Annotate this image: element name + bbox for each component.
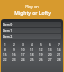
button[interactable]: Item 2 bbox=[3, 34, 61, 39]
button[interactable]: Item 1 bbox=[3, 28, 61, 33]
staticText: Mighty or Lofty bbox=[14, 10, 51, 17]
staticText: 5 bbox=[40, 43, 42, 47]
button[interactable]: 20 bbox=[48, 53, 52, 57]
button[interactable]: 28 bbox=[57, 58, 61, 62]
staticText: 1 bbox=[4, 43, 6, 47]
button[interactable]: 10 bbox=[21, 48, 25, 52]
staticText: 25 bbox=[30, 58, 34, 62]
staticText: Play on bbox=[25, 4, 39, 9]
staticText: Item 0 bbox=[3, 23, 13, 27]
button[interactable]: 13 bbox=[48, 48, 52, 52]
staticText: Item 2 bbox=[3, 35, 13, 39]
button[interactable]: 25 bbox=[30, 58, 34, 62]
staticText: 28 bbox=[57, 58, 61, 62]
staticText: 15 bbox=[3, 53, 7, 57]
staticText: 22 bbox=[3, 58, 7, 62]
staticText: Item 1 bbox=[3, 29, 13, 33]
staticText: 3 bbox=[22, 43, 24, 47]
button[interactable]: 26 bbox=[39, 58, 43, 62]
button[interactable]: 16 bbox=[12, 53, 16, 57]
staticText: 8 bbox=[4, 48, 6, 52]
staticText: 18 bbox=[30, 53, 34, 57]
button[interactable]: 5 bbox=[39, 43, 43, 47]
staticText: 6 bbox=[49, 43, 51, 47]
button[interactable]: 14 bbox=[57, 48, 61, 52]
staticText: 12 bbox=[39, 48, 43, 52]
button[interactable]: 15 bbox=[3, 53, 7, 57]
button[interactable]: 19 bbox=[39, 53, 43, 57]
staticText: 19 bbox=[39, 53, 43, 57]
button[interactable]: 1 bbox=[3, 43, 7, 47]
button[interactable]: Item 0 bbox=[3, 22, 61, 27]
button[interactable]: 21 bbox=[57, 53, 61, 57]
button[interactable]: 27 bbox=[48, 58, 52, 62]
button[interactable]: 3 bbox=[21, 43, 25, 47]
staticText: 20 bbox=[48, 53, 52, 57]
button[interactable]: 4 bbox=[30, 43, 34, 47]
button[interactable]: 12 bbox=[39, 48, 43, 52]
button[interactable]: 2 bbox=[12, 43, 16, 47]
staticText: 7 bbox=[58, 43, 60, 47]
button[interactable]: 9 bbox=[12, 48, 16, 52]
staticText: 11 bbox=[30, 48, 34, 52]
staticText: 10 bbox=[21, 48, 25, 52]
button[interactable]: 6 bbox=[48, 43, 52, 47]
button[interactable]: 22 bbox=[3, 58, 7, 62]
staticText: 24 bbox=[21, 58, 25, 62]
button[interactable]: 18 bbox=[30, 53, 34, 57]
button[interactable]: 8 bbox=[3, 48, 7, 52]
staticText: 14 bbox=[57, 48, 61, 52]
staticText: 4 bbox=[31, 43, 33, 47]
staticText: 21 bbox=[57, 53, 61, 57]
staticText: 2 bbox=[13, 43, 15, 47]
button[interactable]: 17 bbox=[21, 53, 25, 57]
button[interactable]: 23 bbox=[12, 58, 16, 62]
staticText: 13 bbox=[48, 48, 52, 52]
staticText: 27 bbox=[48, 58, 52, 62]
staticText: 16 bbox=[12, 53, 16, 57]
staticText: 26 bbox=[39, 58, 43, 62]
staticText: 23 bbox=[12, 58, 16, 62]
button[interactable]: 11 bbox=[30, 48, 34, 52]
staticText: 9 bbox=[13, 48, 15, 52]
button[interactable]: 7 bbox=[57, 43, 61, 47]
staticText: 17 bbox=[21, 53, 25, 57]
button[interactable]: 24 bbox=[21, 58, 25, 62]
